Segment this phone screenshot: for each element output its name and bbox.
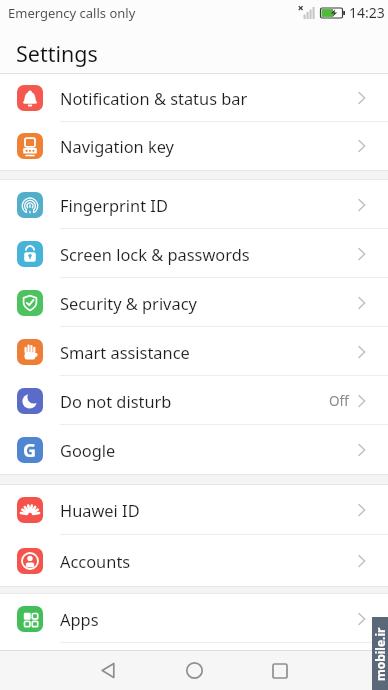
button[interactable]: Notification & status bar <box>0 74 388 122</box>
staticText: Emergency calls only <box>8 4 136 22</box>
button[interactable]: Security & privacy <box>0 278 388 327</box>
button[interactable]: Screen lock & passwords <box>0 229 388 278</box>
staticText: Do not disturb <box>60 390 172 412</box>
staticText: Huawei ID <box>60 499 140 521</box>
button[interactable]: Huawei ID <box>0 485 388 535</box>
staticText: Fingerprint ID <box>60 194 168 216</box>
button[interactable]: Apps <box>0 594 388 643</box>
staticText: Navigation key <box>60 135 174 157</box>
staticText: Security & privacy <box>60 292 197 314</box>
staticText: mobile.ir <box>372 627 388 681</box>
button[interactable]: Navigation key <box>0 122 388 170</box>
button[interactable]: Smart assistance <box>0 327 388 376</box>
staticText: Off <box>329 392 349 410</box>
staticText: Settings <box>16 39 98 68</box>
staticText: Smart assistance <box>60 341 190 363</box>
button[interactable]: G <box>0 425 388 474</box>
staticText: 14:23 <box>349 3 385 22</box>
button[interactable]: Fingerprint ID <box>0 180 388 229</box>
staticText: Screen lock & passwords <box>60 243 250 265</box>
button[interactable]: Do not disturb <box>0 376 388 425</box>
staticText: Notification & status bar <box>60 87 248 109</box>
button[interactable] <box>169 651 219 690</box>
staticText: Accounts <box>60 550 131 572</box>
staticText: Google <box>60 439 116 461</box>
button[interactable]: Accounts <box>0 535 388 586</box>
button[interactable] <box>255 651 305 690</box>
staticText: G <box>23 438 37 463</box>
button[interactable] <box>83 651 133 690</box>
staticText: Apps <box>60 608 99 630</box>
